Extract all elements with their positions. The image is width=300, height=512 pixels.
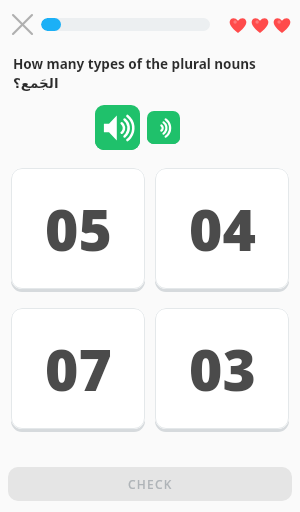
staticText: CHECK	[128, 476, 173, 492]
staticText: الجَمع؟	[13, 75, 59, 91]
staticText: 03	[189, 330, 256, 408]
button[interactable]: Play audio	[95, 105, 140, 150]
staticText: 07	[45, 330, 112, 408]
staticText: 05	[45, 190, 112, 268]
button[interactable]: Close	[6, 8, 38, 40]
button[interactable]: 03	[155, 308, 289, 429]
button[interactable]: 07	[11, 308, 145, 429]
button[interactable]: Play slow audio	[147, 111, 180, 144]
button[interactable]: 05	[11, 168, 145, 289]
staticText: 04	[189, 190, 256, 268]
button[interactable]: CHECK	[8, 467, 292, 501]
button[interactable]: 04	[155, 168, 289, 289]
staticText: How many types of the plural nouns	[13, 55, 256, 73]
